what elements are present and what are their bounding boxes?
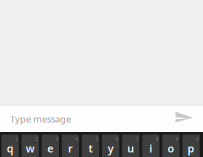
- button[interactable]: 1: [1, 134, 19, 157]
- button[interactable]: 7: [122, 134, 139, 157]
- staticText: u: [127, 141, 134, 155]
- button[interactable]: 5: [82, 134, 99, 157]
- button[interactable]: Send: [175, 112, 203, 126]
- staticText: q: [7, 141, 14, 155]
- button[interactable]: 3: [42, 134, 59, 157]
- button[interactable]: 8: [142, 134, 159, 157]
- staticText: 3: [55, 135, 58, 143]
- staticText: 0: [196, 135, 199, 143]
- button[interactable]: Type message: [0, 106, 175, 132]
- staticText: 2: [35, 135, 38, 143]
- staticText: 6: [115, 135, 118, 143]
- staticText: t: [89, 141, 93, 155]
- button[interactable]: 2: [22, 134, 39, 157]
- staticText: 8: [155, 135, 158, 143]
- staticText: r: [68, 141, 73, 155]
- button[interactable]: 0: [182, 134, 200, 157]
- staticText: p: [187, 141, 194, 155]
- button[interactable]: 9: [162, 134, 180, 157]
- staticText: 7: [135, 135, 138, 143]
- staticText: 1: [15, 135, 18, 143]
- staticText: 4: [75, 135, 78, 143]
- staticText: 9: [176, 135, 179, 143]
- button[interactable]: 6: [102, 134, 119, 157]
- staticText: y: [108, 141, 114, 155]
- button[interactable]: 4: [62, 134, 79, 157]
- staticText: w: [26, 141, 35, 155]
- staticText: e: [47, 141, 53, 155]
- staticText: 5: [95, 135, 98, 143]
- staticText: i: [149, 141, 152, 155]
- staticText: Type message: [10, 113, 71, 125]
- staticText: o: [167, 141, 174, 155]
